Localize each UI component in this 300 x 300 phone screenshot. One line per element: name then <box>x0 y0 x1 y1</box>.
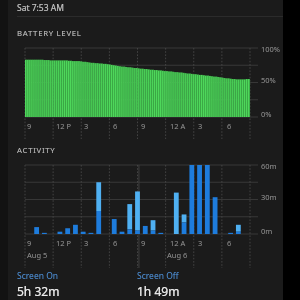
staticText: BATTERY LEVEL <box>17 28 82 39</box>
staticText: 5h 32m <box>17 283 60 299</box>
staticText: 9 <box>141 238 146 248</box>
staticText: 3 <box>84 121 89 131</box>
staticText: 12 P <box>56 238 72 248</box>
staticText: 6 <box>113 238 118 248</box>
button[interactable]: Sat 7:53 AM <box>8 0 283 16</box>
staticText: 30m <box>261 192 277 202</box>
staticText: Screen Off <box>137 270 179 282</box>
staticText: 100% <box>261 44 281 54</box>
staticText: 9 <box>27 121 32 131</box>
staticText: 12 A <box>170 238 186 248</box>
staticText: 6 <box>113 121 118 131</box>
staticText: 6 <box>227 121 232 131</box>
button[interactable]: Screen Off <box>137 270 257 299</box>
staticText: 6 <box>227 238 232 248</box>
staticText: 12 A <box>170 121 186 131</box>
staticText: 50% <box>261 75 276 85</box>
button[interactable]: 60m <box>8 161 283 263</box>
staticText: 3 <box>198 121 203 131</box>
staticText: Screen On <box>17 270 59 282</box>
staticText: Aug 5 <box>27 250 48 260</box>
staticText: 0% <box>261 109 272 119</box>
staticText: 0m <box>261 226 273 236</box>
staticText: 1h 49m <box>137 283 180 299</box>
staticText: 12 P <box>56 121 72 131</box>
button[interactable]: Screen On <box>17 270 137 299</box>
staticText: ACTIVITY <box>17 145 56 156</box>
staticText: Aug 6 <box>167 250 188 260</box>
button[interactable]: 100% <box>8 44 283 137</box>
staticText: 9 <box>27 238 32 248</box>
staticText: 9 <box>141 121 146 131</box>
staticText: 3 <box>198 238 203 248</box>
staticText: 60m <box>261 161 277 171</box>
staticText: Sat 7:53 AM <box>17 2 64 14</box>
staticText: 3 <box>84 238 89 248</box>
